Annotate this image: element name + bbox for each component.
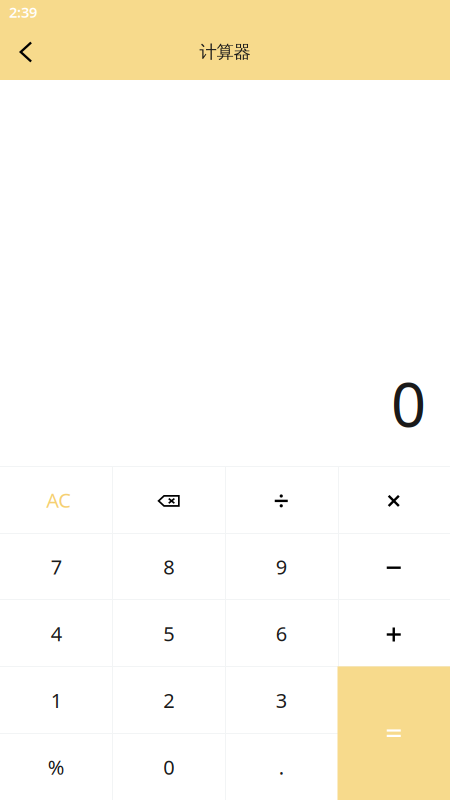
button[interactable]: 7 [0,533,112,600]
button[interactable]: 0 [112,733,225,800]
button[interactable]: Multiply [337,466,450,533]
button[interactable]: 4 [0,600,112,666]
staticText: 8 [163,553,174,580]
staticText: 3 [276,687,287,714]
button[interactable]: % [0,733,112,800]
button[interactable]: 6 [225,600,337,666]
staticText: 6 [276,620,287,647]
staticText: 2:39 [9,2,37,22]
button[interactable]: Back [0,28,52,80]
button[interactable]: 3 [225,666,337,733]
button[interactable]: Backspace [112,466,225,533]
button[interactable]: AC [0,466,112,533]
staticText: 0 [163,754,174,780]
button[interactable]: Divide [225,466,337,533]
button[interactable]: 9 [225,533,337,600]
staticText: 2 [163,687,174,714]
staticText: 7 [51,553,62,580]
button[interactable]: 5 [112,600,225,666]
button[interactable]: Plus [337,600,450,666]
button[interactable]: Minus [337,533,450,600]
button[interactable]: . [225,733,337,800]
staticText: AC [46,487,71,513]
staticText: 1 [51,687,62,714]
button[interactable]: 8 [112,533,225,600]
button[interactable]: Equals [337,666,450,800]
staticText: 5 [163,620,174,647]
staticText: 4 [51,620,62,647]
staticText: . [279,754,284,780]
staticText: 0 [391,363,426,444]
staticText: 9 [276,553,287,580]
staticText: % [48,754,65,780]
staticText: 计算器 [199,41,250,63]
button[interactable]: 1 [0,666,112,733]
button[interactable]: 2 [112,666,225,733]
